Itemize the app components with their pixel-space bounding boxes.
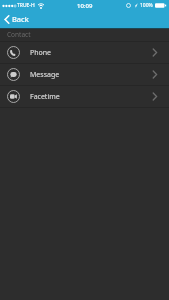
staticText: Contact xyxy=(7,30,31,39)
button[interactable]: Back xyxy=(4,14,29,24)
staticText: Facetime xyxy=(30,92,60,102)
button[interactable]: Message xyxy=(0,64,169,85)
staticText: Phone xyxy=(30,48,52,58)
button[interactable]: Facetime xyxy=(0,86,169,107)
staticText: 10:09 xyxy=(77,2,93,10)
staticText: Message xyxy=(30,70,60,80)
staticText: TRUE-H xyxy=(17,2,35,9)
button[interactable]: Phone xyxy=(0,42,169,63)
staticText: 100% xyxy=(140,2,153,9)
staticText: Back xyxy=(12,14,29,24)
